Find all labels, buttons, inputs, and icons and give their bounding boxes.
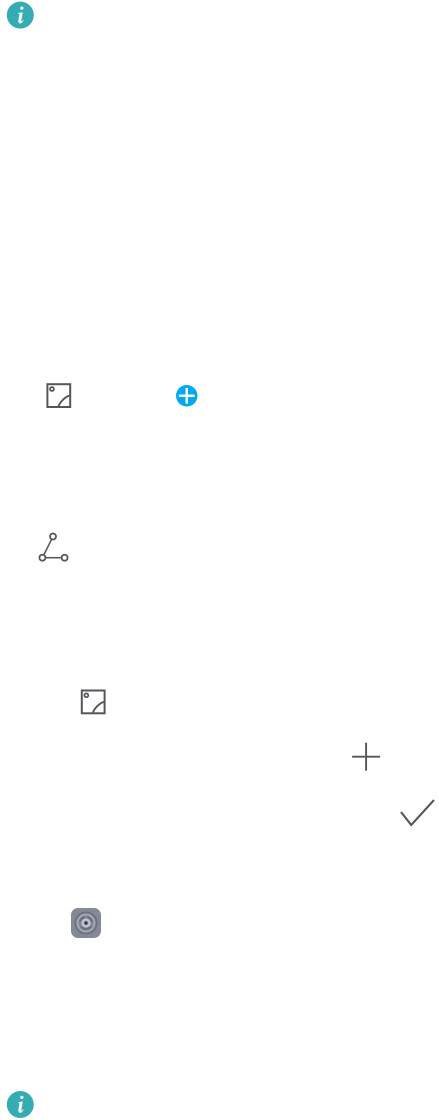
staticText: i: [17, 1089, 24, 1120]
button[interactable]: Information: [7, 1091, 34, 1118]
button[interactable]: Information: [7, 2, 34, 29]
button[interactable]: Share: [38, 533, 68, 562]
staticText: i: [17, 0, 24, 34]
button[interactable]: Add: [352, 742, 381, 771]
button[interactable]: Done: [400, 799, 435, 826]
button[interactable]: Add: [176, 385, 197, 406]
button[interactable]: App: [71, 908, 101, 938]
